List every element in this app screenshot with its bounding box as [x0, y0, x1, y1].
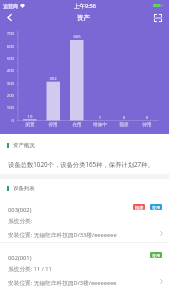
- staticText: 002(001): [8, 254, 32, 262]
- staticText: 0: [0, 118, 14, 124]
- staticText: 闲置: [19, 122, 41, 128]
- staticText: 设备列表: [13, 185, 35, 191]
- staticText: 在用: [152, 205, 161, 210]
- staticText: 300: [0, 81, 14, 87]
- staticText: 安装位置: 无锡旺庄科技园D/3楼/eeeeeeee: [8, 279, 117, 287]
- button[interactable]: 设备列表: [0, 185, 169, 191]
- staticText: 待用: [136, 122, 158, 128]
- staticText: 400: [0, 68, 14, 74]
- staticText: 665: [66, 34, 88, 40]
- staticText: 资产: [77, 14, 91, 22]
- staticText: 0: [113, 115, 135, 121]
- button[interactable]: Back: [0, 11, 19, 24]
- staticText: 报废: [135, 205, 144, 210]
- button[interactable]: 003(002): [0, 195, 169, 243]
- staticText: 003(002): [8, 206, 32, 214]
- staticText: 运营商: [3, 3, 18, 9]
- staticText: 资产概况: [13, 142, 35, 148]
- staticText: 设备总数1020个，设备分类165种，保养计划27种。: [8, 160, 154, 169]
- staticText: 停用: [42, 122, 64, 128]
- staticText: 10: [19, 114, 41, 120]
- staticText: 系统分类:: [8, 217, 33, 225]
- staticText: 安装位置: 无锡旺庄科技园D/33楼/eeeeeee: [8, 231, 117, 239]
- staticText: 维修中: [89, 122, 111, 128]
- staticText: 100: [0, 105, 14, 111]
- staticText: 0: [136, 115, 158, 121]
- staticText: 1: [89, 115, 111, 121]
- staticText: 系统分类: 11 / 11: [8, 265, 52, 273]
- button[interactable]: 资产概况: [0, 142, 169, 148]
- staticText: 上午9:56: [74, 2, 96, 10]
- button[interactable]: Scan QR code: [147, 11, 169, 24]
- button[interactable]: 002(001): [0, 243, 169, 291]
- staticText: 200: [0, 93, 14, 99]
- staticText: 报废: [113, 122, 135, 128]
- staticText: 600: [0, 44, 14, 50]
- staticText: 在用: [66, 122, 88, 128]
- staticText: 302: [42, 76, 64, 82]
- staticText: 500: [0, 56, 14, 62]
- staticText: 700: [0, 31, 14, 37]
- staticText: 在用: [152, 253, 161, 258]
